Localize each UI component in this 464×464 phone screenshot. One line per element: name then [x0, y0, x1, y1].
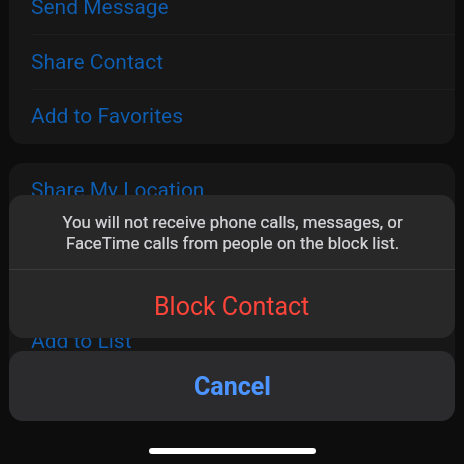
staticText: Share My Contact	[31, 230, 197, 255]
staticText: Add to Emergency	[31, 278, 202, 303]
staticText: Add to List	[31, 329, 132, 354]
button[interactable]: Cancel	[9, 351, 455, 421]
button[interactable]: Block Contact	[9, 270, 455, 338]
button[interactable]: Send Message	[9, 0, 455, 35]
staticText: Add to Favorites	[31, 104, 184, 129]
button[interactable]: Add to Emergency	[9, 266, 455, 314]
staticText: Cancel	[194, 372, 271, 401]
staticText: Block Contact	[154, 292, 310, 321]
staticText: Share My Location	[31, 178, 205, 203]
staticText: Send Message	[31, 0, 169, 20]
staticText: Share Contact	[31, 50, 164, 75]
button[interactable]: Share My Location	[9, 163, 455, 218]
button[interactable]: Add to Favorites	[9, 90, 455, 142]
button[interactable]: Share Contact	[9, 35, 455, 90]
button[interactable]: Share My Contact	[9, 218, 455, 266]
button[interactable]: Add to List	[9, 314, 455, 369]
staticText: You will not receive phone calls, messag…	[62, 212, 403, 253]
